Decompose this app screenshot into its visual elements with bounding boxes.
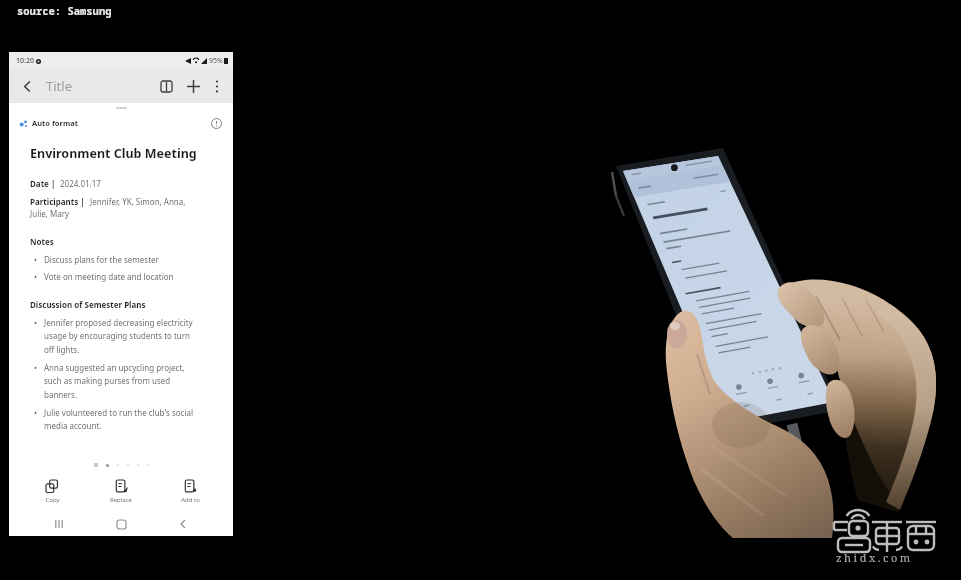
staticText: Discussion of Semester Plans bbox=[30, 299, 146, 310]
button[interactable]: Back bbox=[171, 512, 195, 536]
staticText: 2024.01.17 bbox=[60, 178, 101, 189]
staticText: Anna suggested an upcycling project, suc… bbox=[44, 362, 202, 400]
button[interactable]: Auto format bbox=[19, 115, 78, 131]
staticText: Julie volunteered to run the club's soci… bbox=[44, 407, 202, 431]
button[interactable]: Recents bbox=[47, 512, 71, 536]
button[interactable]: View mode bbox=[155, 75, 177, 97]
staticText: Julie, Mary bbox=[30, 208, 70, 219]
staticText: 95% bbox=[209, 56, 223, 66]
button[interactable]: More options bbox=[207, 76, 227, 96]
staticText: • bbox=[34, 362, 38, 373]
button[interactable]: Info bbox=[209, 116, 223, 130]
button[interactable]: Home bbox=[109, 512, 133, 536]
staticText: Jennifer, YK, Simon, Anna, bbox=[90, 196, 186, 207]
button[interactable]: Copy bbox=[26, 480, 78, 504]
staticText: • bbox=[34, 407, 38, 418]
staticText: source: Samsung bbox=[17, 4, 112, 18]
staticText: • bbox=[34, 271, 38, 282]
staticText: zhidx.com bbox=[836, 550, 913, 565]
staticText: Auto format bbox=[32, 118, 78, 128]
staticText: Replace bbox=[110, 496, 132, 504]
button[interactable]: Title bbox=[44, 73, 74, 99]
staticText: Copy bbox=[45, 496, 60, 504]
staticText: Notes bbox=[30, 236, 54, 247]
button[interactable]: Add to bbox=[164, 480, 216, 504]
button[interactable]: Back bbox=[15, 74, 39, 98]
button[interactable]: Add bbox=[182, 75, 204, 97]
staticText: Vote on meeting date and location bbox=[44, 271, 202, 282]
button[interactable]: Replace bbox=[95, 480, 147, 504]
staticText: Add to bbox=[181, 496, 200, 504]
staticText: Date | bbox=[30, 178, 56, 189]
staticText: • bbox=[34, 254, 38, 265]
staticText: Discuss plans for the semester bbox=[44, 254, 202, 265]
staticText: • bbox=[34, 317, 38, 328]
staticText: 10:20 bbox=[16, 56, 34, 66]
staticText: Participants | bbox=[30, 196, 85, 207]
staticText: Jennifer proposed decreasing electricity… bbox=[44, 317, 202, 355]
staticText: Title bbox=[46, 77, 72, 95]
staticText: Environment Club Meeting bbox=[30, 145, 197, 162]
